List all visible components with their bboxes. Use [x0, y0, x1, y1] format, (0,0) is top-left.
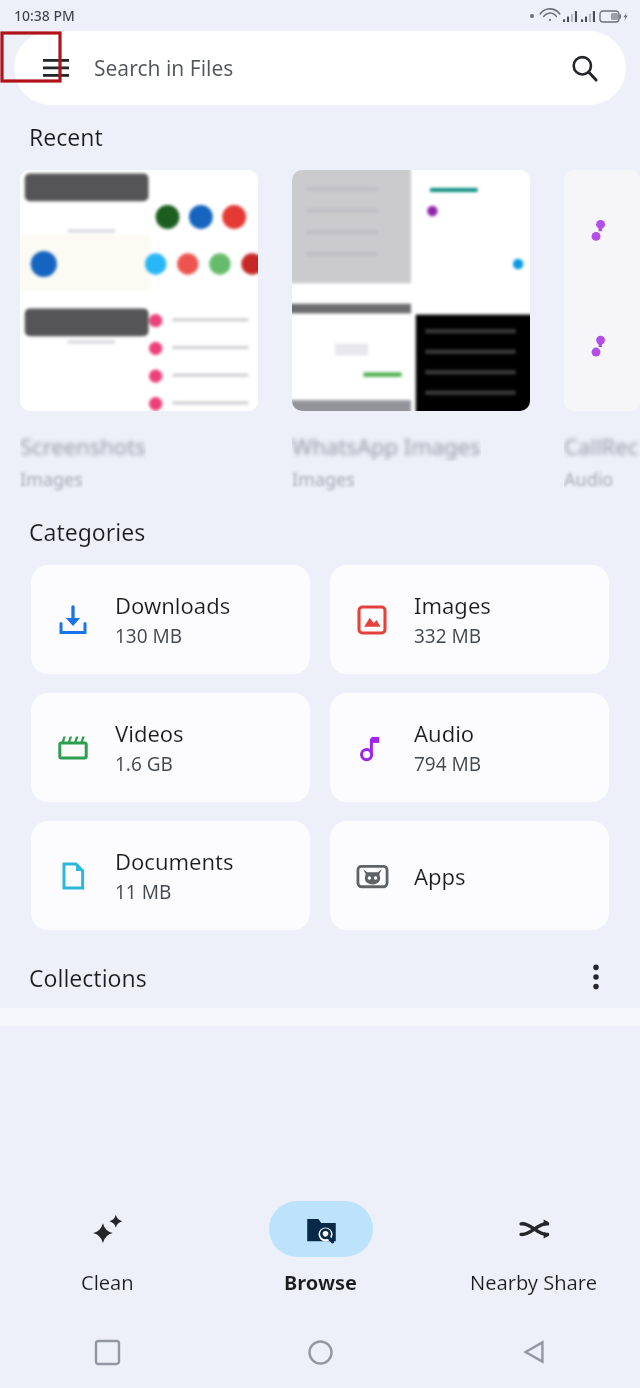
button[interactable]: Downloads — [31, 565, 310, 674]
button[interactable]: Screenshots — [20, 170, 258, 492]
button[interactable]: Open navigation menu — [14, 31, 626, 105]
button[interactable]: Images — [330, 565, 609, 674]
staticText: Clean — [81, 1269, 134, 1296]
staticText: Screenshots — [20, 431, 146, 461]
button[interactable]: More options — [576, 957, 616, 997]
staticText: Collections — [29, 962, 147, 993]
staticText: 1.6 GB — [115, 751, 173, 777]
staticText: Categories — [29, 516, 146, 547]
staticText: 794 MB — [414, 751, 482, 777]
button[interactable]: Documents — [31, 821, 310, 930]
button[interactable]: Open navigation menu — [36, 48, 76, 88]
staticText: Recent — [29, 121, 103, 152]
button[interactable]: Videos — [31, 693, 310, 802]
button[interactable]: WhatsApp Images — [292, 170, 530, 492]
button[interactable]: Nearby Share — [427, 1180, 640, 1316]
staticText: Downloads — [115, 590, 231, 620]
staticText: Apps — [414, 861, 466, 891]
button[interactable]: CallRecord — [564, 170, 640, 492]
staticText: 10:38 PM — [14, 6, 75, 25]
staticText: 130 MB — [115, 623, 183, 649]
staticText: Audio — [564, 467, 614, 492]
button[interactable]: Apps — [330, 821, 609, 930]
button[interactable]: Back — [427, 1316, 640, 1388]
staticText: Audio — [414, 718, 475, 748]
button[interactable]: Home — [214, 1316, 427, 1388]
button[interactable]: Audio — [330, 693, 609, 802]
staticText: Search in Files — [94, 54, 234, 83]
staticText: Documents — [115, 846, 234, 876]
staticText: CallRecord — [564, 431, 640, 461]
button[interactable]: Recent apps — [0, 1316, 214, 1388]
staticText: 332 MB — [414, 623, 482, 649]
staticText: Browse — [284, 1269, 358, 1296]
staticText: Nearby Share — [470, 1269, 597, 1296]
button[interactable]: Clean — [0, 1180, 214, 1316]
staticText: Videos — [115, 718, 184, 748]
staticText: 11 MB — [115, 879, 172, 905]
staticText: Images — [414, 590, 491, 620]
staticText: WhatsApp Images — [292, 431, 481, 461]
staticText: Images — [20, 467, 83, 492]
button[interactable]: Search — [564, 48, 604, 88]
button[interactable]: Browse — [214, 1180, 427, 1316]
staticText: Images — [292, 467, 355, 492]
